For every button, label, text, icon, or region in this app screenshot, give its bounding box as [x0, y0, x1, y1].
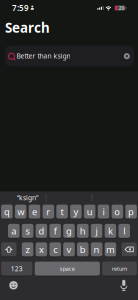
button[interactable]: z [22, 242, 33, 257]
button[interactable]: b [77, 242, 89, 257]
button[interactable]: Shift [1, 242, 17, 257]
staticText: j [96, 225, 98, 237]
staticText: space [60, 265, 75, 272]
staticText: 20 [118, 4, 124, 12]
staticText: return [112, 265, 127, 272]
button[interactable]: o [111, 204, 123, 219]
staticText: r [46, 205, 50, 218]
staticText: s [26, 225, 30, 237]
button[interactable]: d [36, 223, 47, 238]
staticText: o [114, 205, 120, 218]
button[interactable]: w [15, 204, 26, 219]
staticText: f [54, 225, 57, 237]
button[interactable]: f [49, 223, 61, 238]
staticText: w [17, 205, 24, 218]
button[interactable]: space [35, 261, 100, 276]
staticText: t [61, 205, 64, 218]
button[interactable]: “ksign” [6, 192, 48, 204]
button[interactable]: k [105, 223, 116, 238]
button[interactable]: Delete [121, 242, 137, 257]
button[interactable]: x [36, 242, 47, 257]
staticText: q [4, 205, 10, 218]
staticText: h [80, 225, 86, 237]
staticText: d [38, 225, 44, 237]
staticText: y [73, 205, 78, 218]
staticText: 7:59 [12, 3, 29, 13]
button[interactable]: r [42, 204, 54, 219]
button[interactable]: y [70, 204, 82, 219]
staticText: a [11, 225, 16, 237]
button[interactable]: u [84, 204, 95, 219]
staticText: 123 [11, 264, 23, 273]
staticText: x [39, 243, 44, 256]
button[interactable]: p [125, 204, 137, 219]
staticText: k [108, 225, 113, 237]
button[interactable]: Clear text [124, 53, 130, 59]
staticText: l [123, 225, 125, 237]
staticText: Better than ksign [16, 52, 70, 60]
button[interactable]: q [1, 204, 13, 219]
button[interactable]: Numbers [1, 261, 32, 276]
button[interactable]: l [118, 223, 130, 238]
staticText: z [26, 243, 30, 256]
button[interactable]: h [77, 223, 89, 238]
button[interactable]: m [105, 242, 116, 257]
button[interactable]: t [56, 204, 68, 219]
staticText: p [128, 205, 134, 218]
staticText: c [53, 243, 57, 256]
button[interactable]: a [8, 223, 20, 238]
button[interactable]: v [63, 242, 75, 257]
staticText: “ksign” [17, 193, 38, 202]
staticText: v [66, 243, 71, 256]
staticText: b [80, 243, 86, 256]
button[interactable]: n [91, 242, 102, 257]
button[interactable]: c [49, 242, 61, 257]
staticText: e [32, 205, 37, 218]
button[interactable]: Emoji [9, 281, 18, 289]
button[interactable]: return [102, 261, 137, 276]
button[interactable]: Dictation [119, 279, 129, 291]
button[interactable]: g [63, 223, 75, 238]
button[interactable]: j [91, 223, 102, 238]
staticText: i [102, 205, 104, 218]
button[interactable]: e [29, 204, 40, 219]
button[interactable]: s [22, 223, 33, 238]
button[interactable]: i [98, 204, 109, 219]
staticText: Search [5, 19, 50, 36]
staticText: u [87, 205, 93, 218]
staticText: m [106, 243, 115, 256]
staticText: n [94, 243, 100, 256]
staticText: g [66, 225, 72, 237]
